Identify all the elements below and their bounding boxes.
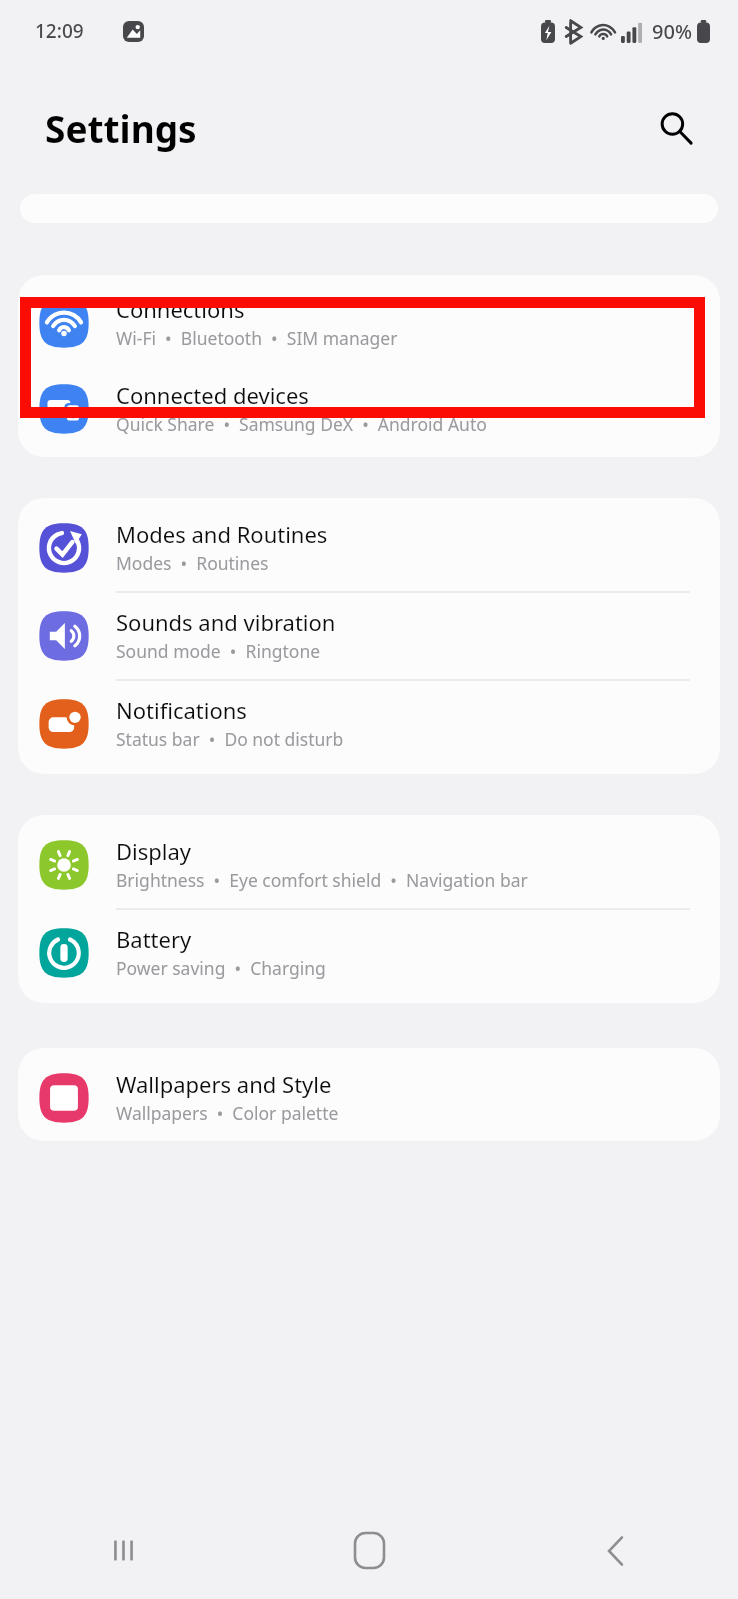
other: Wallpapers and Style [35,1069,93,1127]
staticText: Status bar • Do not disturb [116,727,344,751]
staticText: Sounds and vibration [116,607,336,637]
button[interactable]: Connections [18,280,720,366]
staticText: Brightness • Eye comfort shield • Naviga… [116,868,528,892]
other: Modes and Routines [35,519,93,577]
staticText: Connections [116,294,245,324]
staticText: Battery [116,924,192,954]
button[interactable]: Battery [18,910,720,996]
other: Sounds and vibration [35,607,93,665]
staticText: Sound mode • Ringtone [116,639,321,663]
button[interactable]: Connected devices [18,366,720,452]
staticText: 90% [652,18,692,45]
staticText: Settings [45,103,197,153]
staticText: Connected devices [116,380,309,410]
other: Battery [35,924,93,982]
staticText: Modes • Routines [116,551,269,575]
button[interactable]: Display [18,822,720,908]
staticText: Display [116,836,192,866]
button[interactable]: Back [492,1502,738,1599]
staticText: Quick Share • Samsung DeX • Android Auto [116,412,487,436]
button[interactable]: Wallpapers and Style [18,1055,720,1141]
staticText: Wallpapers and Style [116,1069,332,1099]
button[interactable]: Search [652,104,700,152]
staticText: Wallpapers • Color palette [116,1101,339,1125]
staticText: Modes and Routines [116,519,328,549]
button[interactable]: Modes and Routines [18,505,720,591]
staticText: Wi-Fi • Bluetooth • SIM manager [116,326,398,350]
staticText: Power saving • Charging [116,956,326,980]
other: Display [35,836,93,894]
button[interactable]: Notifications [18,681,720,767]
other: Connected devices [35,380,93,438]
staticText: Notifications [116,695,247,725]
other: Notifications [35,695,93,753]
button[interactable]: Home [246,1502,492,1599]
staticText: 12:09 [35,18,84,44]
button[interactable]: Sounds and vibration [18,593,720,679]
button[interactable]: Recents [0,1502,246,1599]
other: Connections [35,294,93,352]
